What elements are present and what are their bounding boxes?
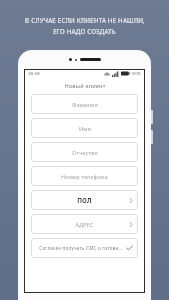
other: Согласие подтверждено (126, 245, 133, 251)
button[interactable]: Номер телефона (31, 166, 138, 186)
staticText: ЕГО НАДО СОЗДАТЬ (53, 27, 116, 35)
button[interactable]: ПОЛ (31, 190, 138, 210)
staticText: Согласен получать СМС о готовн... (36, 245, 126, 251)
staticText: Отчество (72, 149, 98, 156)
staticText: ПОЛ (77, 196, 92, 204)
staticText: Номер телефона (61, 173, 108, 180)
staticText: АДРЕС (75, 221, 94, 228)
button[interactable]: Имя (31, 118, 138, 138)
staticText: Новый клиент (64, 82, 106, 90)
staticText: В СЛУЧАЕ ЕСЛИ КЛИЕНТА НЕ НАШЛИ, (25, 16, 145, 24)
staticText: Имя (79, 125, 91, 132)
button[interactable]: Фамилия (31, 94, 138, 114)
button[interactable]: Согласен получать СМС о готовн... (31, 238, 138, 258)
staticText: 100% (131, 71, 141, 76)
button[interactable]: Отчество (31, 142, 138, 162)
staticText: 20:58 (28, 71, 40, 77)
staticText: Фамилия (72, 101, 98, 108)
button[interactable]: АДРЕС (31, 214, 138, 234)
